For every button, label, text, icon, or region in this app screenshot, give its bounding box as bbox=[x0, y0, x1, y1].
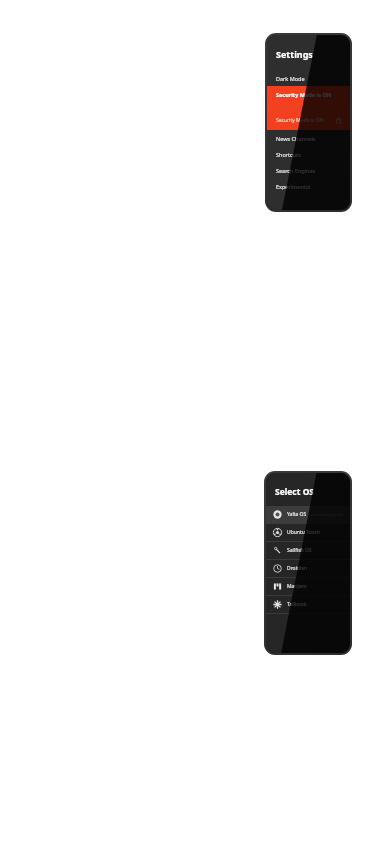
button[interactable]: Search Engines bbox=[267, 162, 350, 178]
staticText: Security Mode is ON bbox=[276, 91, 332, 98]
staticText: Experimental bbox=[276, 183, 311, 190]
staticText: Select OS bbox=[275, 486, 315, 498]
button[interactable]: Tailbook bbox=[266, 596, 350, 613]
staticText: connecting to site bbox=[311, 512, 343, 517]
button[interactable]: Ubuntu Touch bbox=[266, 524, 350, 541]
button[interactable]: Yalta OS bbox=[266, 506, 350, 523]
staticText: Tailbook bbox=[287, 601, 307, 608]
staticText: Security Mode is ON bbox=[276, 117, 324, 124]
staticText: Security Mode is OFF bbox=[276, 104, 325, 111]
staticText: Ubuntu Touch bbox=[287, 529, 321, 536]
button[interactable]: Droidian bbox=[266, 560, 350, 577]
button[interactable]: Sailfish OS bbox=[266, 542, 350, 559]
button[interactable]: Shortcuts bbox=[267, 146, 350, 162]
staticText: Yalta OS bbox=[287, 511, 307, 518]
button[interactable]: Dark Mode bbox=[267, 70, 350, 86]
other: Security lock bbox=[335, 117, 342, 124]
button[interactable]: Security Mode is ON bbox=[267, 86, 350, 130]
button[interactable]: Experimental bbox=[267, 178, 350, 194]
staticText: News Channels bbox=[276, 135, 316, 142]
staticText: Droidian bbox=[287, 565, 308, 572]
staticText: Manjaro bbox=[287, 583, 307, 590]
button[interactable]: News Channels bbox=[267, 130, 350, 146]
staticText: Dark Mode bbox=[276, 75, 305, 82]
staticText: Search Engines bbox=[276, 167, 316, 174]
button[interactable]: Manjaro bbox=[266, 578, 350, 595]
staticText: Shortcuts bbox=[276, 151, 301, 158]
staticText: Sailfish OS bbox=[287, 547, 312, 554]
staticText: Settings bbox=[276, 48, 313, 60]
